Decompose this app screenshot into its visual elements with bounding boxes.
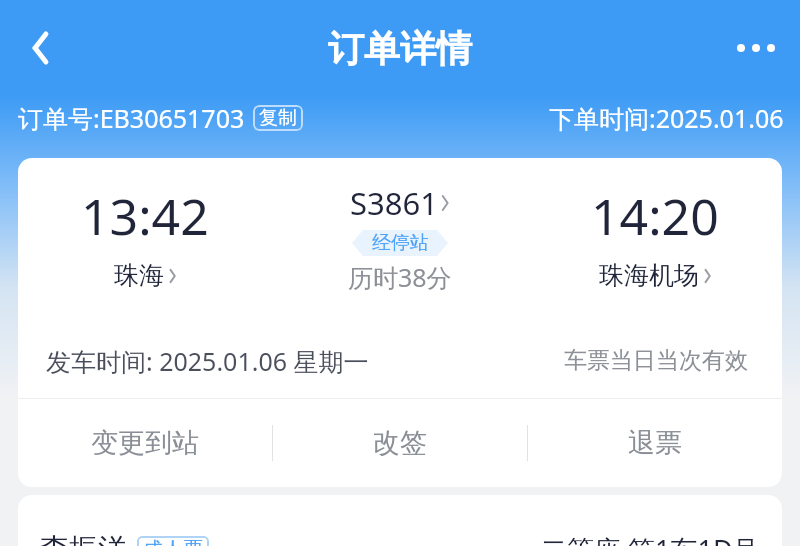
staticText: 车票当日当次有效 xyxy=(564,346,748,375)
staticText: 订单号:EB30651703 xyxy=(18,101,245,135)
staticText: 变更到站 xyxy=(91,426,199,460)
button[interactable]: 复制 xyxy=(253,105,303,131)
button[interactable]: 13:42 xyxy=(18,158,782,323)
staticText: 珠海机场 xyxy=(599,260,699,291)
button[interactable]: 改签 xyxy=(273,399,527,487)
staticText: 退票 xyxy=(628,426,682,460)
staticText: 改签 xyxy=(373,426,427,460)
button[interactable]: 变更到站 xyxy=(18,399,272,487)
staticText: 发车时间: 2025.01.06 星期一 xyxy=(46,344,369,378)
staticText: 珠海 xyxy=(114,260,164,291)
staticText: 李振洋 xyxy=(40,531,127,546)
staticText: 订单详情 xyxy=(328,26,472,71)
button[interactable]: 退票 xyxy=(528,399,782,487)
staticText: 14:20 xyxy=(591,182,719,250)
staticText: 复制 xyxy=(259,106,297,130)
button[interactable]: More options xyxy=(724,16,788,80)
button[interactable]: Back xyxy=(8,16,72,80)
staticText: S3861 xyxy=(350,182,438,224)
staticText: 成人票 xyxy=(143,537,203,546)
staticText: 经停站 xyxy=(372,231,429,255)
staticText: 下单时间:2025.01.06 xyxy=(549,101,784,135)
staticText: 13:42 xyxy=(81,182,209,250)
staticText: 历时38分 xyxy=(348,260,452,294)
staticText: 二等座 第1车1D号 xyxy=(540,531,760,546)
